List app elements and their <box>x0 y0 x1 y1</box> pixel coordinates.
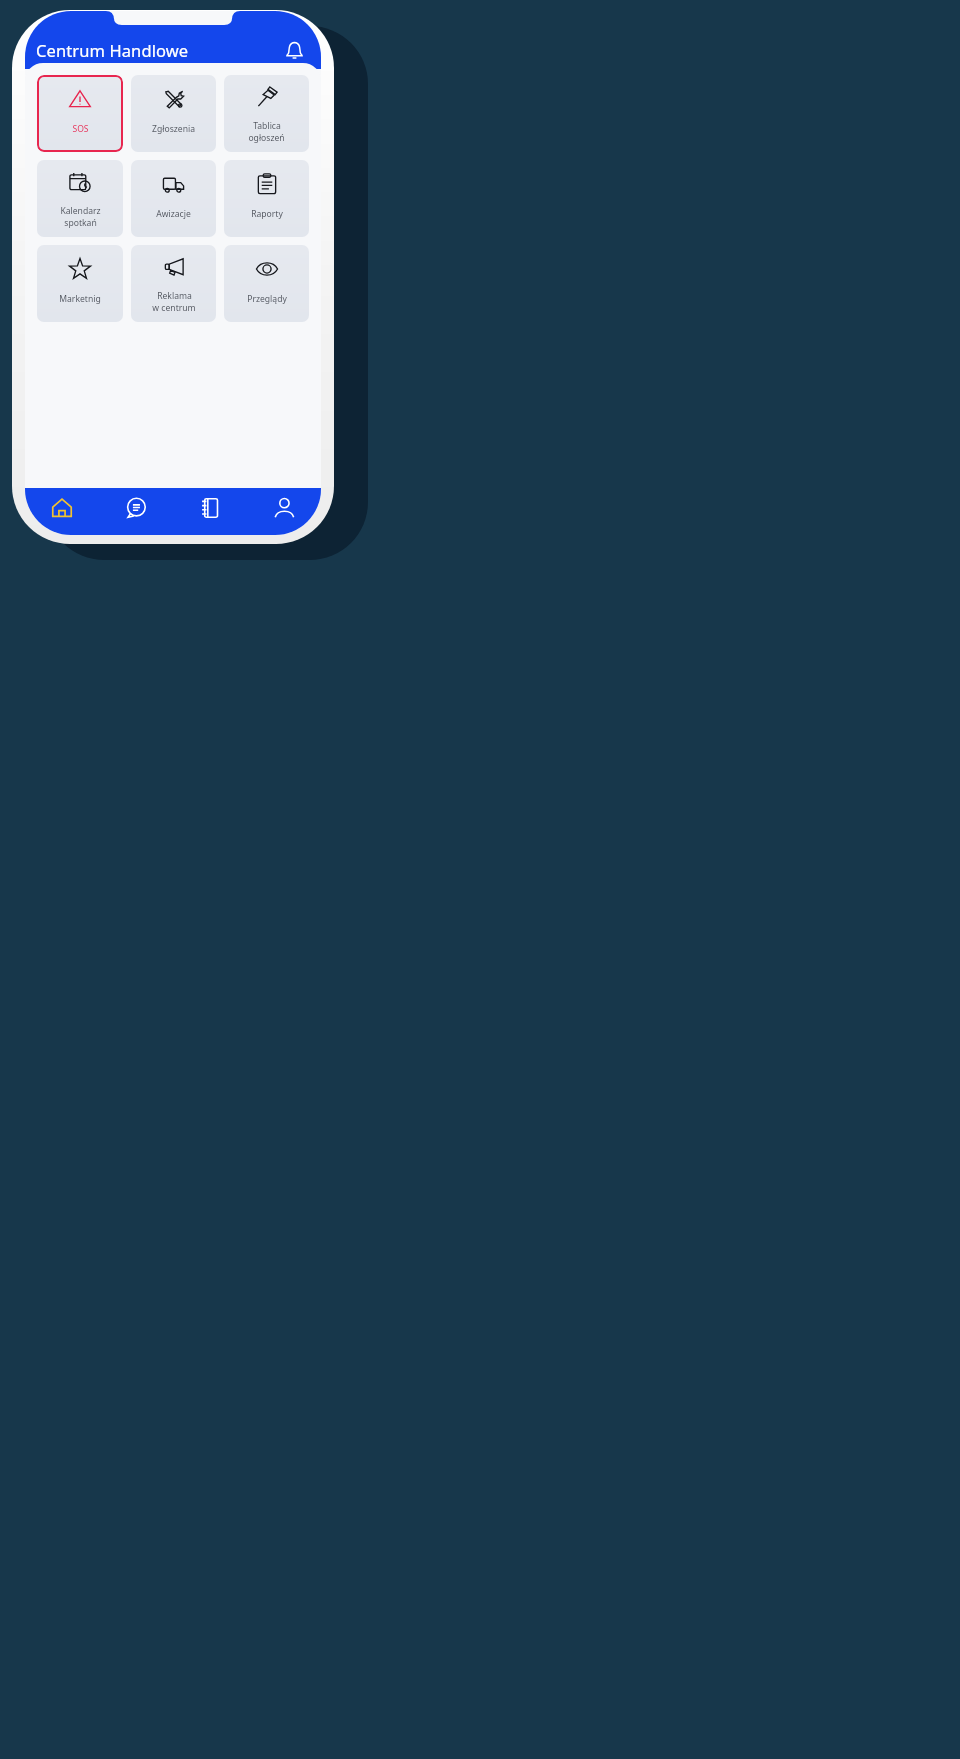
button[interactable]: Przeglądy <box>224 245 309 322</box>
button[interactable]: Marketnig <box>37 245 123 322</box>
staticText: Raporty <box>251 208 283 220</box>
staticText: ogłoszeń <box>248 132 285 144</box>
button[interactable]: Notifications <box>281 37 307 63</box>
button[interactable]: Kalendarz <box>37 160 123 237</box>
staticText: w centrum <box>152 302 196 314</box>
button[interactable]: Tablica <box>224 75 309 152</box>
staticText: Centrum Handlowe <box>36 39 189 61</box>
button[interactable]: Raporty <box>224 160 309 237</box>
staticText: SOS <box>72 123 89 135</box>
button[interactable]: Reklama <box>131 245 216 322</box>
staticText: Marketnig <box>59 293 101 305</box>
staticText: Kalendarz <box>60 205 101 217</box>
button[interactable]: Notebook <box>173 488 247 535</box>
staticText: Reklama <box>157 290 192 302</box>
button[interactable]: Messages <box>99 488 173 535</box>
staticText: Przeglądy <box>247 293 287 305</box>
button[interactable]: Profile <box>247 488 321 535</box>
staticText: Zgłoszenia <box>152 123 195 135</box>
button[interactable]: SOS <box>37 75 123 152</box>
staticText: spotkań <box>64 217 97 229</box>
button[interactable]: Home <box>25 488 99 535</box>
button[interactable]: Zgłoszenia <box>131 75 216 152</box>
button[interactable]: Awizacje <box>131 160 216 237</box>
staticText: Awizacje <box>156 208 191 220</box>
staticText: Tablica <box>253 120 281 132</box>
